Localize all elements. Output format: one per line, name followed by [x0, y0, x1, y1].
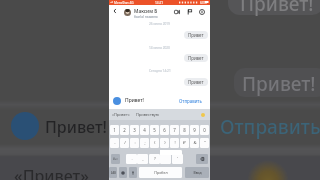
staticText: 5: [153, 127, 156, 133]
button[interactable]: !: [170, 138, 179, 148]
button[interactable]: /: [120, 138, 129, 148]
button[interactable]: 5: [150, 125, 159, 135]
staticText: 6: [163, 127, 166, 133]
button[interactable]: &: [190, 138, 199, 148]
staticText: Сегодня 14:21: [149, 69, 171, 73]
staticText: ,: [142, 156, 144, 162]
staticText: -: [114, 140, 116, 146]
button[interactable]: Back: [111, 7, 119, 15]
button[interactable]: Отправить: [177, 96, 204, 106]
button[interactable]: 6: [160, 125, 169, 135]
staticText: ;: [144, 140, 146, 146]
button[interactable]: Pin: [185, 7, 194, 16]
staticText: 4: [143, 127, 146, 133]
button[interactable]: Video call: [172, 7, 181, 16]
button[interactable]: -: [110, 138, 119, 148]
staticText: Привет: [188, 79, 204, 85]
staticText: Пробел: [154, 170, 168, 175]
button[interactable]: 2: [120, 125, 129, 135]
button[interactable]: ": [200, 138, 209, 148]
button[interactable]: Backspace: [196, 154, 208, 164]
staticText: 14:21: [155, 1, 164, 5]
button[interactable]: ;: [140, 138, 149, 148]
button[interactable]: Voice input: [129, 167, 137, 178]
staticText: был(а) недавно: [134, 15, 158, 19]
button[interactable]: #+=: [111, 154, 120, 164]
staticText: !: [174, 140, 176, 146]
button[interactable]: Пробел: [139, 167, 182, 178]
staticText: Привет!: [240, 0, 314, 17]
staticText: (: [154, 140, 156, 146]
staticText: ₽: [183, 140, 186, 146]
staticText: &: [193, 140, 197, 146]
staticText: Отправить: [179, 98, 202, 104]
staticText: Привет: [188, 55, 204, 61]
staticText: 9: [193, 127, 196, 133]
staticText: МегаФон 4G: [114, 1, 134, 5]
staticText: 7: [173, 127, 176, 133]
staticText: Отправить: [220, 114, 320, 140]
staticText: Привет!: [242, 71, 316, 97]
button[interactable]: ): [160, 138, 169, 148]
staticText: 63%: [200, 1, 207, 5]
button[interactable]: ₽: [180, 138, 189, 148]
button[interactable]: Ввод: [185, 167, 209, 178]
button[interactable]: .: [126, 154, 137, 164]
button[interactable]: 0: [200, 125, 209, 135]
button[interactable]: 1: [110, 125, 119, 135]
staticText: 1: [113, 127, 116, 133]
button[interactable]: :: [130, 138, 139, 148]
staticText: Привествую: [136, 112, 159, 117]
button[interactable]: ?: [149, 154, 160, 164]
staticText: /: [124, 140, 126, 146]
button[interactable]: АБВ: [109, 167, 117, 178]
staticText: 26 июня 2019: [149, 22, 170, 26]
staticText: #+=: [113, 157, 118, 161]
button[interactable]: Привет: [184, 54, 208, 62]
button[interactable]: 3: [130, 125, 139, 135]
staticText: ': [177, 156, 178, 162]
staticText: Привет!: [45, 116, 107, 138]
staticText: Ввод: [193, 170, 202, 175]
button[interactable]: 8: [180, 125, 189, 135]
button[interactable]: ,: [137, 154, 148, 164]
staticText: ": [204, 140, 206, 146]
button[interactable]: Привет: [184, 31, 208, 39]
button[interactable]: 4: [140, 125, 149, 135]
button[interactable]: Attach: [113, 97, 121, 105]
staticText: :: [134, 140, 136, 146]
button[interactable]: 7: [170, 125, 179, 135]
staticText: АБВ: [111, 171, 116, 175]
button[interactable]: Info: [197, 7, 206, 16]
staticText: «Привет»: [112, 112, 130, 117]
button[interactable]: (: [150, 138, 159, 148]
staticText: Максим Б: [134, 8, 158, 15]
staticText: ?: [154, 156, 156, 162]
button[interactable]: Emoji keyboard: [119, 167, 127, 178]
button[interactable]: Привет: [184, 78, 208, 86]
staticText: 14 июня 2020: [149, 46, 170, 50]
staticText: Привет: [188, 32, 204, 38]
staticText: 8: [183, 127, 186, 133]
button[interactable]: 9: [190, 125, 199, 135]
staticText: Привет!: [125, 97, 144, 104]
staticText: «Привет»: [14, 165, 89, 180]
staticText: 3: [133, 127, 136, 133]
button[interactable]: ': [172, 154, 183, 164]
staticText: 0: [203, 127, 206, 133]
staticText: .: [131, 156, 133, 162]
staticText: ): [164, 140, 166, 146]
staticText: 2: [123, 127, 126, 133]
